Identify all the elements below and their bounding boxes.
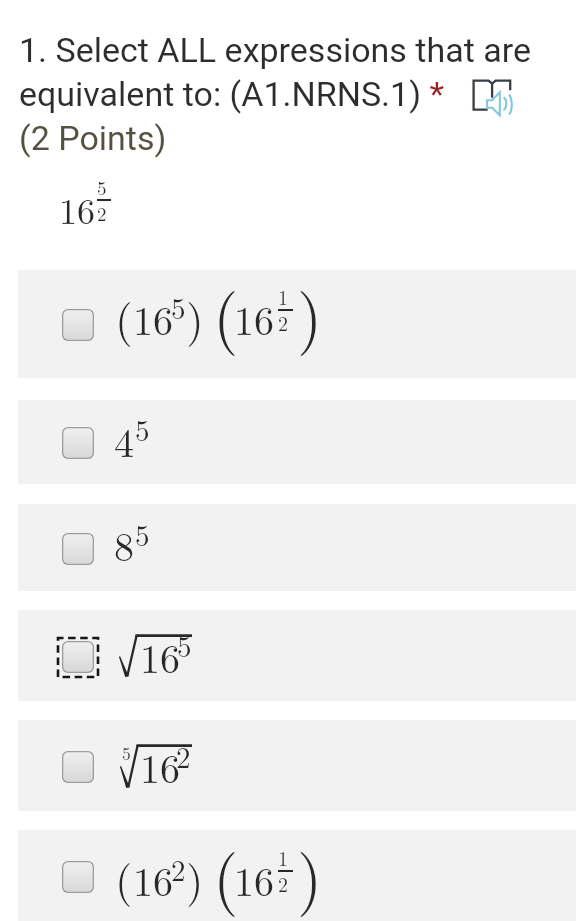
button[interactable]: 8 — [18, 504, 576, 591]
staticText: 5 — [171, 286, 186, 327]
staticText: 16 — [140, 738, 180, 795]
staticText: 2 — [171, 848, 186, 889]
staticText: ) — [297, 267, 323, 359]
staticText: 1. Select ALL expressions that are equiv… — [19, 30, 551, 158]
staticText: 16 — [133, 290, 173, 347]
staticText: 2 — [176, 735, 191, 776]
staticText: 2 — [97, 200, 107, 227]
button[interactable]: 5 — [18, 720, 576, 811]
button[interactable]: Read aloud — [470, 76, 516, 120]
staticText: 16 — [140, 628, 180, 685]
staticText: ) — [186, 285, 204, 350]
staticText: ) — [186, 846, 204, 909]
staticText: ( — [213, 267, 239, 359]
staticText: 16 — [133, 851, 173, 908]
staticText: 16 — [234, 851, 274, 908]
button[interactable]: ( — [18, 830, 576, 921]
staticText: 16 — [234, 290, 274, 347]
button[interactable]: 4 — [18, 400, 576, 484]
staticText: ( — [213, 828, 239, 919]
staticText: ) — [297, 828, 323, 919]
staticText: 2 — [278, 869, 288, 897]
staticText: 16 — [59, 183, 95, 234]
button[interactable]: ( — [18, 270, 576, 378]
staticText: 5 — [177, 624, 192, 665]
button[interactable]: 16 — [18, 610, 576, 701]
staticText: ( — [115, 285, 133, 350]
staticText: 8 — [114, 516, 134, 573]
staticText: 1 — [278, 282, 288, 310]
staticText: 2 — [278, 308, 288, 336]
staticText: 5 — [97, 174, 107, 201]
staticText: 5 — [122, 740, 131, 765]
staticText: 5 — [135, 513, 150, 554]
staticText: 5 — [135, 408, 150, 449]
staticText: ( — [115, 846, 133, 909]
staticText: 1 — [278, 843, 288, 871]
staticText: 4 — [114, 412, 134, 469]
